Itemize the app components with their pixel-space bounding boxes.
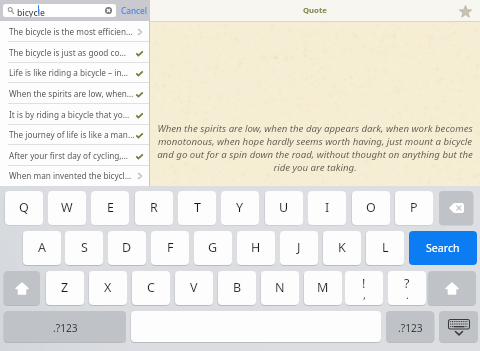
staticText: Search: [426, 241, 460, 255]
button[interactable]: It is by riding a bicycle that yo…: [0, 104, 150, 125]
staticText: .?123: [398, 321, 423, 335]
staticText: F: [167, 239, 174, 256]
button[interactable]: Backspace: [439, 191, 473, 225]
staticText: T: [194, 199, 201, 216]
button[interactable]: B: [218, 271, 256, 305]
staticText: N: [275, 279, 285, 296]
staticText: U: [279, 199, 289, 216]
staticText: Life is like riding a bicycle – in…: [9, 67, 128, 78]
button[interactable]: F: [151, 231, 189, 265]
staticText: .: [406, 287, 409, 302]
button[interactable]: D: [108, 231, 146, 265]
button[interactable]: Y: [221, 191, 259, 225]
staticText: O: [366, 199, 376, 216]
button[interactable]: G: [194, 231, 232, 265]
button[interactable]: The bicycle is the most efficien…: [0, 21, 150, 42]
staticText: Y: [236, 199, 244, 216]
staticText: X: [104, 279, 112, 296]
staticText: P: [410, 199, 418, 216]
staticText: J: [297, 239, 301, 256]
staticText: ?: [404, 275, 410, 292]
staticText: !: [362, 275, 366, 292]
button[interactable]: O: [352, 191, 390, 225]
staticText: Q: [19, 199, 29, 216]
button[interactable]: Q: [5, 191, 43, 225]
button[interactable]: Cancel: [119, 4, 148, 17]
button[interactable]: Hide keyboard: [439, 311, 478, 342]
staticText: When man invented the bicycl…: [9, 170, 132, 181]
staticText: Quote: [303, 5, 327, 15]
staticText: G: [208, 239, 218, 256]
button[interactable]: .?123: [386, 311, 434, 342]
button[interactable]: X: [89, 271, 127, 305]
button[interactable]: Shift: [4, 271, 40, 305]
staticText: B: [233, 279, 242, 296]
button[interactable]: !: [345, 271, 383, 305]
staticText: M: [317, 279, 329, 296]
button[interactable]: The bicycle is just as good co…: [0, 42, 150, 63]
button[interactable]: H: [237, 231, 275, 265]
button[interactable]: ?: [388, 271, 426, 305]
button[interactable]: When the spirits are low, when…: [0, 83, 150, 104]
button[interactable]: After your first day of cycling,…: [0, 145, 150, 166]
button[interactable]: Shift: [428, 271, 476, 305]
button[interactable]: E: [91, 191, 129, 225]
staticText: W: [61, 199, 73, 216]
staticText: H: [251, 239, 261, 256]
staticText: C: [147, 279, 155, 296]
staticText: L: [382, 239, 389, 256]
button[interactable]: Life is like riding a bicycle – in…: [0, 62, 150, 83]
button[interactable]: J: [280, 231, 318, 265]
staticText: V: [190, 279, 198, 296]
button[interactable]: When man invented the bicycl…: [0, 165, 150, 186]
staticText: The bicycle is the most efficien…: [9, 26, 133, 37]
staticText: The bicycle is just as good co…: [9, 47, 126, 58]
button[interactable]: R: [135, 191, 173, 225]
staticText: bicycle: [17, 7, 45, 17]
staticText: Z: [61, 279, 69, 296]
button[interactable]: Favorite: [458, 4, 473, 19]
staticText: Cancel: [121, 5, 147, 16]
staticText: After your first day of cycling,…: [9, 150, 129, 161]
button[interactable]: U: [265, 191, 303, 225]
button[interactable]: C: [132, 271, 170, 305]
staticText: When the spirits are low, when the day a…: [150, 122, 480, 174]
button[interactable]: The journey of life is like a man…: [0, 124, 150, 145]
staticText: It is by riding a bicycle that yo…: [9, 109, 130, 120]
button[interactable]: bicycle: [3, 4, 116, 17]
staticText: .?123: [53, 321, 78, 335]
staticText: D: [122, 239, 132, 256]
staticText: I: [325, 199, 330, 216]
button[interactable]: .?123: [4, 311, 126, 342]
button[interactable]: S: [65, 231, 103, 265]
button[interactable]: K: [323, 231, 361, 265]
button[interactable]: I: [308, 191, 346, 225]
staticText: ,: [363, 287, 366, 302]
staticText: R: [150, 199, 158, 216]
button[interactable]: M: [304, 271, 342, 305]
staticText: E: [107, 199, 114, 216]
button[interactable]: T: [178, 191, 216, 225]
button[interactable]: Z: [46, 271, 84, 305]
button[interactable]: Search: [409, 231, 477, 265]
button[interactable]: N: [261, 271, 299, 305]
button[interactable]: L: [366, 231, 404, 265]
staticText: S: [81, 239, 88, 256]
staticText: K: [338, 239, 346, 256]
staticText: A: [38, 239, 46, 256]
staticText: When the spirits are low, when…: [9, 88, 134, 99]
button[interactable]: A: [23, 231, 61, 265]
staticText: The journey of life is like a man…: [9, 129, 135, 140]
button[interactable]: P: [395, 191, 433, 225]
button[interactable]: V: [175, 271, 213, 305]
button[interactable]: W: [48, 191, 86, 225]
